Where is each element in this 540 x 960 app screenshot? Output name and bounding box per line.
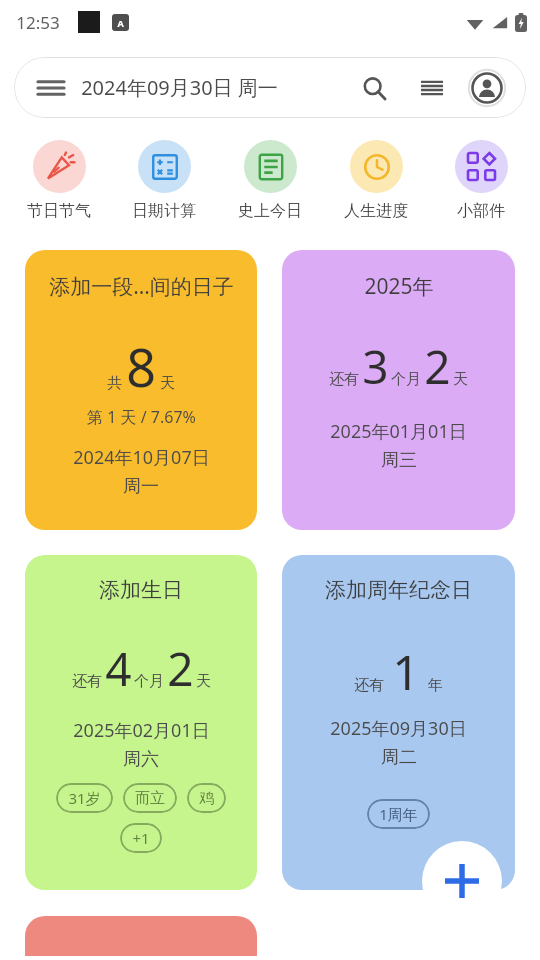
staticText: 天	[196, 672, 211, 691]
staticText: 2025年01月01日	[330, 419, 467, 444]
staticText: 年	[428, 676, 443, 695]
button[interactable]: 而立	[123, 783, 177, 813]
staticText: 31岁	[68, 788, 101, 808]
staticText: 12:53	[16, 11, 60, 34]
button[interactable]: +1	[120, 823, 162, 853]
staticText: 天	[453, 370, 468, 389]
button[interactable]: 史上今日	[223, 140, 317, 221]
button[interactable]: View options	[413, 69, 451, 107]
staticText: 还有	[354, 676, 384, 695]
button[interactable]: 31岁	[56, 783, 113, 813]
staticText: 2025年	[364, 272, 434, 301]
staticText: 周六	[123, 748, 159, 771]
staticText: 史上今日	[238, 201, 302, 221]
staticText: 个月	[391, 370, 421, 389]
staticText: 添加生日	[99, 577, 183, 603]
staticText: 共	[107, 374, 122, 393]
staticText: 第 1 天 / 7.67%	[87, 406, 196, 428]
staticText: 天	[160, 374, 175, 393]
button[interactable]	[25, 916, 257, 956]
button[interactable]: 人生进度	[329, 140, 423, 221]
button[interactable]: Account	[466, 67, 508, 109]
button[interactable]: Menu	[14, 57, 526, 118]
staticText: 8	[126, 331, 156, 402]
staticText: 还有	[329, 370, 359, 389]
staticText: 周一	[123, 475, 159, 498]
staticText: 而立	[135, 789, 165, 808]
staticText: 2	[424, 335, 451, 398]
staticText: 4	[105, 637, 132, 700]
staticText: 日期计算	[132, 201, 196, 221]
button[interactable]: 添加一段…间的日子	[25, 250, 257, 530]
button[interactable]: 鸡	[187, 783, 226, 813]
staticText: 个月	[134, 672, 164, 691]
staticText: 人生进度	[344, 201, 408, 221]
staticText: 2025年09月30日	[330, 716, 467, 741]
staticText: +1	[132, 828, 150, 848]
button[interactable]: Search	[355, 69, 393, 107]
button[interactable]: 日期计算	[117, 140, 211, 221]
button[interactable]: Menu	[36, 73, 66, 103]
staticText: 2024年09月30日 周一	[81, 74, 278, 101]
button[interactable]: 节日节气	[12, 140, 106, 221]
button[interactable]: 1周年	[367, 799, 430, 829]
staticText: 还有	[72, 672, 102, 691]
staticText: 周三	[381, 449, 417, 472]
button[interactable]: 添加生日	[25, 555, 257, 890]
staticText: 3	[362, 335, 389, 398]
staticText: 1周年	[379, 804, 418, 824]
button[interactable]: Add	[422, 841, 502, 921]
staticText: 添加一段…间的日子	[49, 272, 234, 301]
staticText: 鸡	[199, 789, 214, 808]
button[interactable]: 小部件	[434, 140, 528, 221]
staticText: 2025年02月01日	[73, 718, 210, 743]
staticText: 小部件	[457, 201, 505, 221]
staticText: A	[117, 17, 124, 29]
staticText: 周二	[381, 746, 417, 769]
staticText: 2	[167, 637, 194, 700]
button[interactable]: 2025年	[282, 250, 515, 530]
staticText: 1	[392, 639, 420, 704]
staticText: 节日节气	[27, 201, 91, 221]
staticText: 添加周年纪念日	[325, 577, 472, 603]
button[interactable]: 添加周年纪念日	[282, 555, 515, 890]
staticText: 2024年10月07日	[73, 445, 210, 470]
